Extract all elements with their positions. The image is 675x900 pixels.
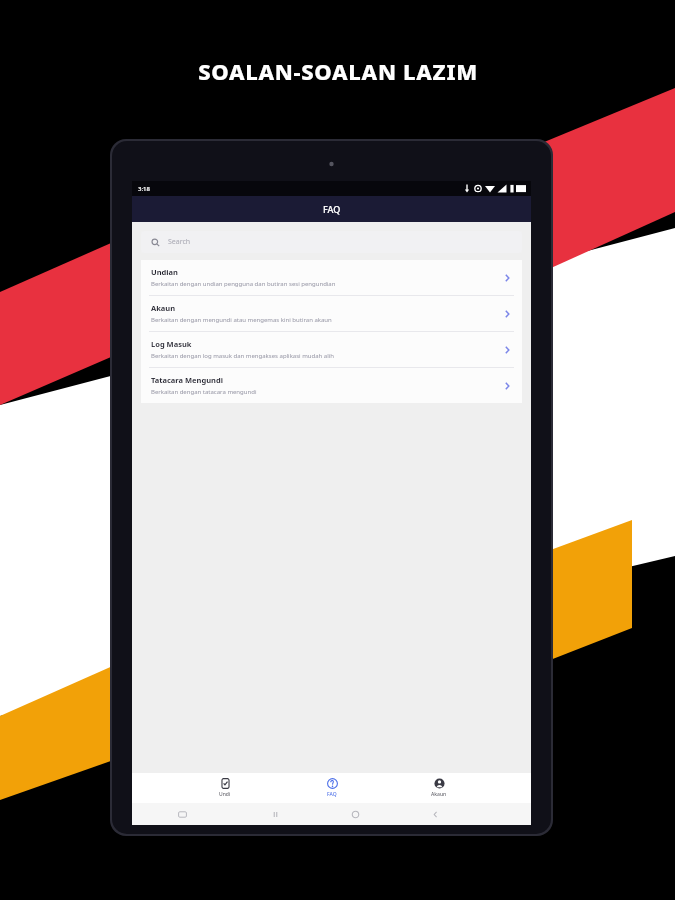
button[interactable]: Akaun	[141, 296, 522, 331]
button[interactable]: Log Masuk	[141, 332, 522, 367]
staticText: SOALAN-SOALAN LAZIM	[198, 56, 478, 86]
staticText: 3:18	[138, 185, 150, 193]
staticText: Berkaitan dengan tatacara mengundi	[151, 388, 257, 396]
staticText: FAQ	[323, 203, 341, 215]
button[interactable]: Undian	[141, 260, 522, 295]
button[interactable]: FAQ	[310, 773, 354, 803]
other: Recents	[271, 810, 280, 819]
button[interactable]: Tatacara Mengundi	[141, 368, 522, 403]
staticText: Search	[168, 237, 191, 247]
staticText: Akaun	[151, 303, 176, 313]
staticText: Tatacara Mengundi	[151, 375, 223, 385]
staticText: Berkaitan dengan log masuk dan mengakses…	[151, 352, 335, 360]
staticText: FAQ	[327, 791, 337, 798]
button[interactable]: Undi	[203, 773, 247, 803]
staticText: Akaun	[431, 791, 447, 798]
button[interactable]: Search	[141, 231, 522, 253]
staticText: Undi	[219, 791, 231, 798]
staticText: Log Masuk	[151, 339, 192, 349]
other: Keyboard	[178, 810, 187, 819]
staticText: Berkaitan dengan undian pengguna dan but…	[151, 280, 336, 288]
other: Back	[431, 810, 440, 819]
staticText: Undian	[151, 267, 178, 277]
button[interactable]: Akaun	[417, 773, 461, 803]
staticText: Berkaitan dengan mengundi atau mengemas …	[151, 316, 332, 324]
other: Home	[351, 810, 360, 819]
